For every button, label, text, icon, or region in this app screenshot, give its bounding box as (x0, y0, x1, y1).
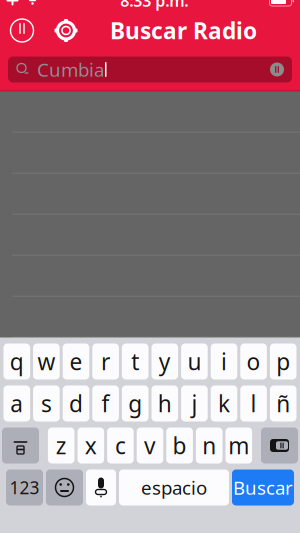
staticText: e (69, 346, 82, 376)
button[interactable]: d (63, 385, 89, 421)
button[interactable]: p (270, 343, 296, 379)
staticText: a (10, 388, 23, 418)
staticText: d (69, 388, 83, 418)
button[interactable]: s (33, 385, 60, 421)
staticText: z (56, 430, 67, 460)
button[interactable]: m (225, 427, 252, 463)
staticText: o (247, 346, 261, 376)
button[interactable]: q (3, 343, 30, 379)
button[interactable]: x (77, 427, 104, 463)
staticText: w (37, 346, 55, 376)
button[interactable]: l (240, 385, 267, 421)
button[interactable]: f (92, 385, 119, 421)
button[interactable]: u (181, 343, 208, 379)
button[interactable]: k (211, 385, 237, 421)
button[interactable]: z (48, 427, 74, 463)
staticText: Buscar Radio (110, 15, 257, 45)
button[interactable]: Borrar (261, 427, 298, 463)
button[interactable]: Ajustes (44, 10, 88, 50)
button[interactable]: v (137, 427, 163, 463)
staticText: v (144, 430, 156, 460)
staticText: g (128, 388, 142, 418)
button[interactable]: i (211, 343, 237, 379)
button[interactable]: t (122, 343, 148, 379)
button[interactable]: Dictado (86, 469, 116, 505)
staticText: c (115, 430, 126, 460)
staticText: h (158, 388, 172, 418)
staticText: q (10, 346, 24, 376)
staticText: f (102, 388, 110, 418)
staticText: ñ (276, 388, 290, 418)
staticText: x (85, 430, 97, 460)
staticText: n (202, 430, 216, 460)
button[interactable]: Cumbia (0, 50, 300, 90)
button[interactable]: Emoji (46, 469, 83, 505)
staticText: i (221, 346, 227, 376)
staticText: k (218, 388, 230, 418)
button[interactable]: h (151, 385, 178, 421)
button[interactable]: a (3, 385, 30, 421)
button[interactable]: o (240, 343, 267, 379)
staticText: s (41, 388, 52, 418)
staticText: 8:33 p.m. (120, 0, 188, 11)
button[interactable]: Mayúsculas (2, 427, 39, 463)
button[interactable]: g (122, 385, 148, 421)
staticText: r (101, 346, 110, 376)
staticText: t (131, 346, 139, 376)
staticText: u (187, 346, 201, 376)
staticText: espacio (141, 475, 207, 500)
button[interactable]: 123 (6, 469, 43, 505)
button[interactable]: ñ (270, 385, 296, 421)
button[interactable]: Buscar (232, 469, 294, 505)
staticText: 123 (9, 476, 39, 499)
staticText: Cumbia (37, 57, 104, 82)
staticText: b (173, 430, 187, 460)
staticText: m (228, 430, 249, 460)
staticText: j (191, 388, 197, 418)
button[interactable]: Cerrar (0, 10, 44, 50)
staticText: p (276, 346, 290, 376)
button[interactable]: y (151, 343, 178, 379)
button[interactable]: e (63, 343, 89, 379)
button[interactable]: j (181, 385, 208, 421)
button[interactable]: c (107, 427, 134, 463)
button[interactable]: n (196, 427, 222, 463)
staticText: Buscar (233, 475, 293, 500)
staticText: l (251, 388, 257, 418)
button[interactable]: b (166, 427, 193, 463)
staticText: y (159, 346, 171, 376)
button[interactable]: w (33, 343, 60, 379)
button[interactable]: espacio (119, 469, 229, 505)
button[interactable]: r (92, 343, 119, 379)
